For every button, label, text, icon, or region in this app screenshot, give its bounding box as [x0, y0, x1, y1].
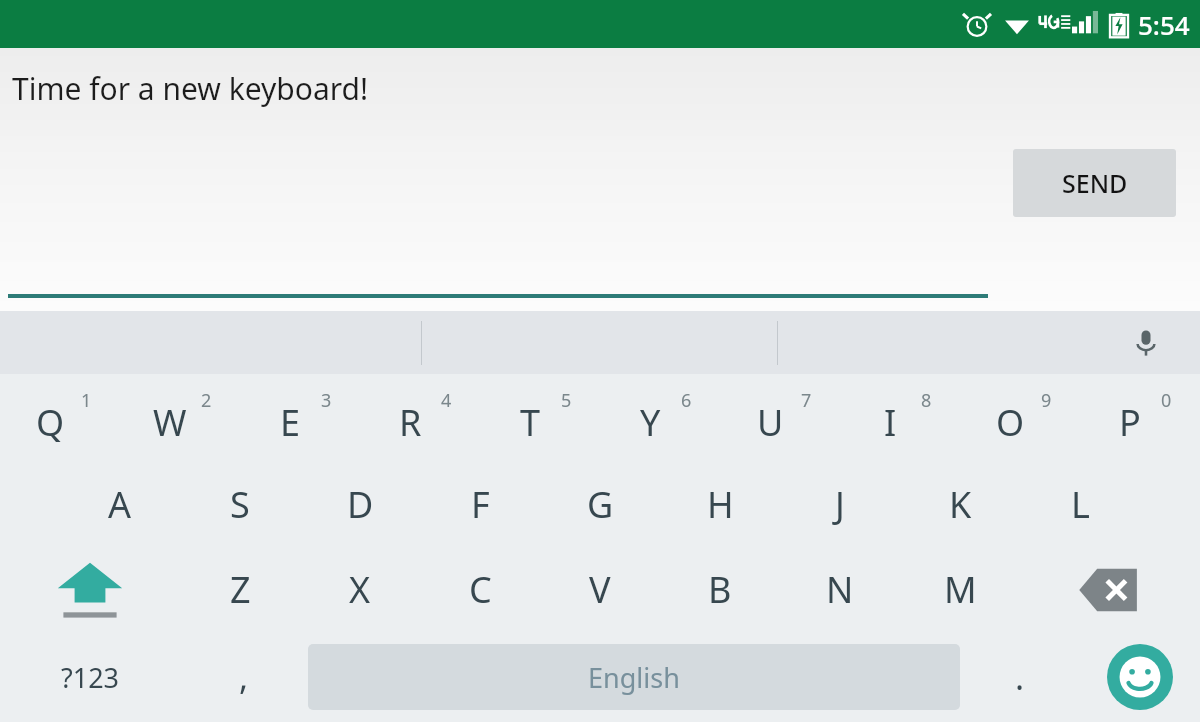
button[interactable]: A	[60, 462, 180, 547]
button[interactable]: ,	[180, 632, 308, 722]
button[interactable]: Q	[0, 374, 120, 462]
button[interactable]: V	[540, 547, 660, 632]
staticText: 1	[81, 388, 92, 413]
staticText: K	[949, 480, 972, 529]
staticText: P	[1119, 398, 1141, 447]
staticText: ?123	[61, 659, 120, 696]
button[interactable]: U	[720, 374, 840, 462]
staticText: H	[707, 480, 734, 529]
button[interactable]: O	[960, 374, 1080, 462]
button[interactable]: SEND	[1013, 149, 1176, 217]
button[interactable]: B	[660, 547, 780, 632]
staticText: 9	[1041, 388, 1052, 413]
button[interactable]: English	[308, 644, 960, 710]
staticText: Time for a new keyboard!	[12, 68, 369, 109]
button[interactable]: J	[780, 462, 900, 547]
button[interactable]: G	[540, 462, 660, 547]
staticText: Z	[230, 565, 251, 614]
staticText: L	[1071, 480, 1090, 529]
button[interactable]: T	[480, 374, 600, 462]
staticText: English	[588, 659, 680, 696]
staticText: X	[349, 565, 371, 614]
button[interactable]: Z	[180, 547, 300, 632]
button[interactable]: L	[1020, 462, 1140, 547]
staticText: Y	[640, 398, 661, 447]
staticText: S	[230, 480, 250, 529]
button[interactable]: .	[960, 632, 1080, 722]
button[interactable]: Voice input	[0, 311, 1200, 374]
button[interactable]: Y	[600, 374, 720, 462]
button[interactable]: H	[660, 462, 780, 547]
button[interactable]: Voice input	[1122, 319, 1170, 367]
staticText: C	[469, 565, 492, 614]
button[interactable]: Shift	[0, 547, 180, 632]
button[interactable]: E	[240, 374, 360, 462]
button[interactable]: D	[300, 462, 420, 547]
staticText: O	[996, 398, 1025, 447]
staticText: 3	[321, 388, 332, 413]
staticText: F	[471, 480, 490, 529]
button[interactable]: M	[900, 547, 1020, 632]
button[interactable]: Emoji	[1080, 632, 1200, 722]
staticText: J	[835, 480, 845, 529]
staticText: U	[757, 398, 784, 447]
button[interactable]: F	[420, 462, 540, 547]
staticText: M	[944, 565, 977, 614]
staticText: 2	[201, 388, 212, 413]
staticText: Q	[36, 398, 65, 447]
button[interactable]: P	[1080, 374, 1200, 462]
staticText: T	[520, 398, 541, 447]
staticText: B	[708, 565, 732, 614]
staticText: 4	[441, 388, 452, 413]
button[interactable]: I	[840, 374, 960, 462]
button[interactable]: N	[780, 547, 900, 632]
staticText: D	[347, 480, 374, 529]
staticText: E	[280, 398, 301, 447]
staticText: N	[826, 565, 854, 614]
button[interactable]: W	[120, 374, 240, 462]
staticText: 7	[801, 388, 812, 413]
staticText: SEND	[1062, 166, 1128, 200]
button[interactable]: S	[180, 462, 300, 547]
staticText: ,	[239, 654, 249, 700]
staticText: 5:54	[1138, 7, 1190, 42]
button[interactable]: ?123	[0, 632, 180, 722]
staticText: W	[153, 398, 187, 447]
staticText: R	[399, 398, 422, 447]
staticText: V	[589, 565, 611, 614]
staticText: 6	[681, 388, 692, 413]
staticText: 0	[1161, 388, 1172, 413]
staticText: 8	[921, 388, 932, 413]
button[interactable]: Backspace	[1020, 547, 1200, 632]
staticText: 5	[561, 388, 572, 413]
staticText: .	[1015, 654, 1025, 700]
staticText: G	[587, 480, 614, 529]
staticText: I	[884, 398, 897, 447]
staticText: A	[108, 480, 132, 529]
button[interactable]: K	[900, 462, 1020, 547]
button[interactable]: C	[420, 547, 540, 632]
button[interactable]: X	[300, 547, 420, 632]
button[interactable]: R	[360, 374, 480, 462]
